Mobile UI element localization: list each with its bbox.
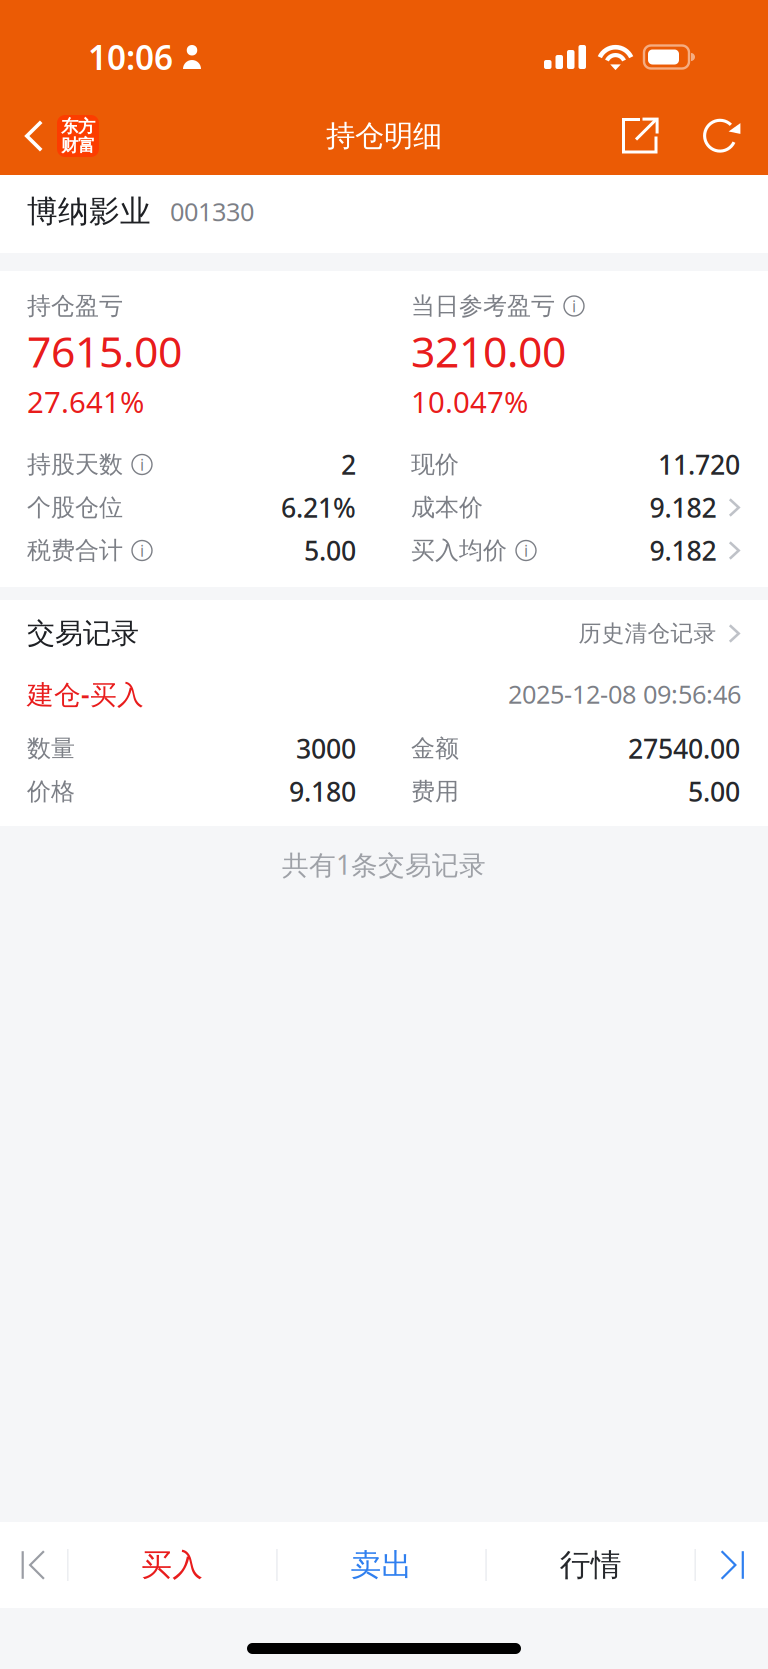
staticText: 东方	[61, 116, 95, 137]
staticText: 建仓-买入	[27, 676, 144, 712]
staticText: 10.047%	[411, 382, 528, 421]
staticText: 卖出	[350, 1546, 412, 1584]
staticText: 27540.00	[628, 731, 740, 766]
staticText: 10:06	[88, 35, 173, 79]
staticText: 27.641%	[27, 382, 144, 421]
staticText: 持股天数	[27, 450, 123, 479]
staticText: 6.21%	[281, 490, 356, 525]
button[interactable]: 卖出	[278, 1522, 485, 1608]
staticText: 2	[341, 447, 356, 482]
staticText: 数量	[27, 734, 75, 763]
staticText: 成本价	[411, 493, 483, 522]
staticText: 2025-12-08 09:56:46	[508, 677, 741, 711]
staticText: i	[140, 540, 144, 561]
button[interactable]: 历史清仓记录	[578, 620, 740, 647]
staticText: 财富	[61, 135, 95, 156]
staticText: 5.00	[304, 533, 356, 568]
staticText: 持仓明细	[326, 118, 442, 154]
staticText: 9.180	[289, 774, 356, 809]
button[interactable]: 上一只股票	[0, 1522, 67, 1608]
staticText: 001330	[170, 195, 254, 228]
button[interactable]: 返回东方财富	[0, 97, 113, 175]
staticText: 3000	[296, 731, 356, 766]
staticText: 9.182	[649, 533, 716, 568]
button[interactable]: 下一只股票	[696, 1522, 768, 1608]
staticText: 税费合计	[27, 536, 123, 565]
button[interactable]: 行情	[487, 1522, 694, 1608]
staticText: 买入均价	[411, 536, 507, 565]
staticText: 博纳影业	[27, 193, 151, 230]
staticText: 3210.00	[411, 323, 566, 379]
staticText: 共有1条交易记录	[282, 847, 486, 882]
button[interactable]: 刷新	[681, 97, 763, 175]
staticText: 持仓盈亏	[27, 291, 123, 321]
staticText: i	[572, 295, 576, 317]
staticText: 现价	[411, 450, 459, 479]
staticText: 11.720	[658, 447, 740, 482]
staticText: i	[140, 454, 144, 475]
staticText: 9.182	[649, 490, 716, 525]
staticText: 7615.00	[27, 323, 182, 379]
button[interactable]: 买入	[69, 1522, 276, 1608]
button[interactable]: 分享	[599, 97, 681, 175]
staticText: 行情	[560, 1546, 622, 1584]
staticText: 买入	[141, 1546, 203, 1584]
staticText: 价格	[27, 777, 75, 806]
staticText: 费用	[411, 777, 459, 806]
staticText: 交易记录	[27, 616, 139, 651]
staticText: 历史清仓记录	[578, 620, 716, 647]
staticText: 金额	[411, 734, 459, 763]
staticText: 5.00	[688, 774, 740, 809]
staticText: 当日参考盈亏	[411, 291, 555, 321]
staticText: i	[524, 540, 528, 561]
staticText: 个股仓位	[27, 493, 123, 522]
